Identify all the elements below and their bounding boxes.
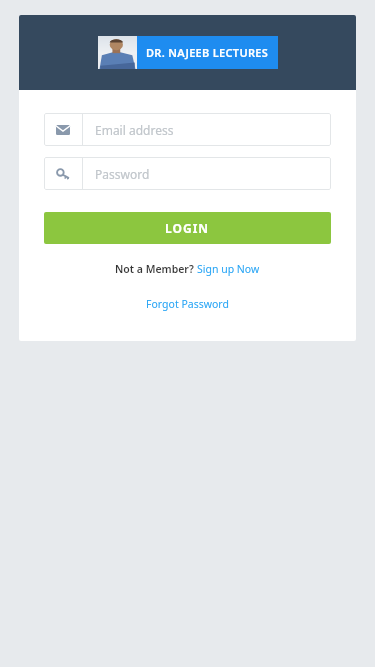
staticText: Forgot Password (146, 297, 229, 311)
staticText: Sign up Now (197, 262, 260, 276)
button[interactable]: Email (44, 113, 331, 146)
staticText: Email address (95, 122, 174, 138)
button[interactable]: Dr. Najeeb Lectures logo (98, 36, 278, 69)
button[interactable]: Forgot Password (146, 297, 229, 311)
staticText: LOGIN (165, 220, 210, 236)
staticText: DR. NAJEEB LECTURES (146, 45, 269, 60)
staticText: Not a Member? (115, 262, 194, 276)
button[interactable]: Password (44, 157, 331, 190)
staticText: Password (95, 166, 150, 182)
button[interactable]: LOGIN (44, 212, 331, 244)
button[interactable]: Sign up Now (197, 262, 260, 276)
